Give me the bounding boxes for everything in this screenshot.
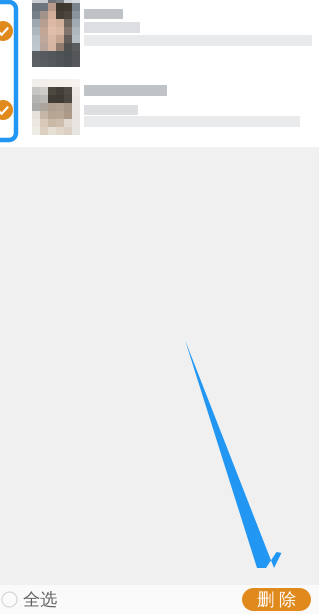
button[interactable] [0, 78, 319, 145]
staticText: 删 除 [257, 589, 296, 610]
staticText: 全选 [23, 589, 57, 610]
button[interactable]: 删 除 [242, 588, 311, 611]
button[interactable]: 全选 [0, 582, 57, 614]
button[interactable] [0, 0, 319, 78]
